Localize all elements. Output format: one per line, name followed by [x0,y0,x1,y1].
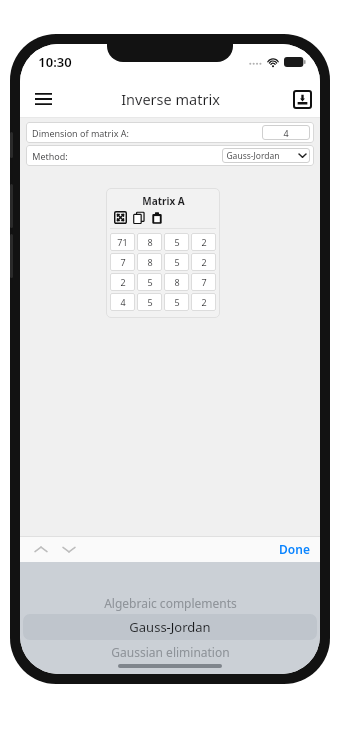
button[interactable]: 7 [110,253,135,271]
button[interactable]: 5 [164,253,189,271]
button[interactable]: 4 [262,125,310,140]
staticText: 5 [174,296,180,308]
staticText: Method: [32,150,68,162]
button[interactable]: Open navigation menu [26,82,60,116]
staticText: 8 [147,256,153,268]
staticText: 2 [201,296,207,308]
staticText: 8 [147,236,153,248]
button[interactable]: 71 [110,233,135,251]
staticText: Done [279,541,310,557]
button[interactable]: Next field [58,538,80,560]
button[interactable]: 8 [137,253,162,271]
button[interactable]: 8 [164,273,189,291]
staticText: 10:30 [38,53,72,71]
staticText: 4 [120,296,126,308]
button[interactable]: Paste matrix [150,211,163,224]
staticText: 7 [120,256,126,268]
button[interactable]: Save matrix [293,90,312,109]
button[interactable]: 7 [191,273,216,291]
button[interactable]: 5 [137,293,162,311]
button[interactable]: 5 [164,293,189,311]
staticText: Gaussian elimination [111,644,230,660]
staticText: 2 [120,276,126,288]
staticText: 7 [201,276,207,288]
button[interactable]: 2 [191,233,216,251]
button[interactable]: 4 [110,293,135,311]
button[interactable]: Algebraic complements [20,592,320,614]
button[interactable]: 8 [137,233,162,251]
button[interactable]: Resize matrix [114,211,127,224]
staticText: Dimension of matrix A: [32,127,129,139]
staticText: 8 [174,276,180,288]
staticText: Gauss-Jordan [226,150,280,162]
button[interactable]: 2 [191,293,216,311]
staticText: 5 [147,296,153,308]
button[interactable]: Gauss-Jordan [222,148,310,163]
staticText: 2 [201,256,207,268]
button[interactable]: Previous field [30,538,52,560]
button[interactable]: 5 [164,233,189,251]
staticText: 5 [174,256,180,268]
staticText: 5 [147,276,153,288]
button[interactable]: Copy matrix [132,211,145,224]
button[interactable]: 5 [137,273,162,291]
button[interactable]: Gaussian elimination [20,640,320,664]
staticText: Matrix A [142,194,185,208]
staticText: 5 [174,236,180,248]
button[interactable]: Gauss-Jordan [23,614,317,640]
button[interactable]: Done [269,538,320,560]
staticText: Algebraic complements [104,595,237,611]
staticText: 71 [117,236,128,248]
staticText: 4 [283,127,289,139]
button[interactable]: 2 [191,253,216,271]
staticText: Gauss-Jordan [129,618,211,636]
staticText: Inverse matrix [121,89,220,109]
staticText: 2 [201,236,207,248]
button[interactable]: 2 [110,273,135,291]
